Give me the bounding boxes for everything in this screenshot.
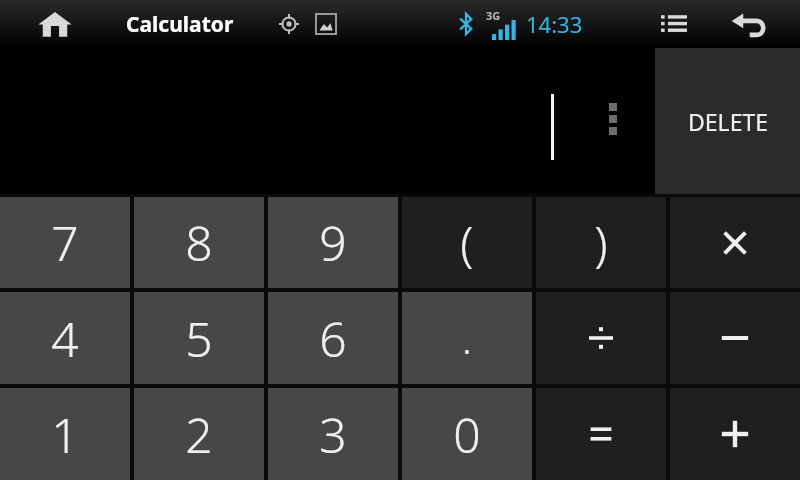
staticText: 3 [319,402,347,467]
staticText: Calculator [126,10,234,39]
button[interactable]: Divide [536,292,666,384]
button[interactable]: 3 [268,388,398,480]
staticText: 5 [185,306,213,371]
staticText: 0 [453,402,481,467]
button[interactable]: 9 [268,197,398,288]
button[interactable]: Equals [536,388,666,480]
staticText: ( [460,210,474,275]
staticText: 9 [319,210,347,275]
staticText: 7 [51,210,79,275]
staticText: ) [594,210,608,275]
button[interactable]: . [402,292,532,384]
button[interactable]: ( [402,197,532,288]
button[interactable]: Back [718,0,778,48]
button[interactable]: 0 [402,388,532,480]
button[interactable]: Add [670,388,800,480]
button[interactable]: More options [592,48,634,194]
button[interactable]: Multiply [670,197,800,288]
staticText: 8 [185,210,213,275]
button[interactable]: 1 [0,388,130,480]
button[interactable]: Menu [646,0,702,48]
staticText: 2 [185,402,213,467]
staticText: 6 [319,306,347,371]
staticText: 4 [51,306,79,371]
button[interactable]: ) [536,197,666,288]
button[interactable]: DELETE [655,48,800,194]
staticText: DELETE [688,106,768,137]
staticText: 14:33 [526,9,583,39]
staticText: 3G [486,8,501,23]
button[interactable]: 8 [134,197,264,288]
staticText: 1 [51,402,79,467]
button[interactable]: Subtract [670,292,800,384]
button[interactable]: 4 [0,292,130,384]
button[interactable]: Home [26,0,84,48]
button[interactable]: 5 [134,292,264,384]
button[interactable]: 2 [134,388,264,480]
button[interactable]: 6 [268,292,398,384]
button[interactable]: 7 [0,197,130,288]
staticText: . [462,311,472,365]
